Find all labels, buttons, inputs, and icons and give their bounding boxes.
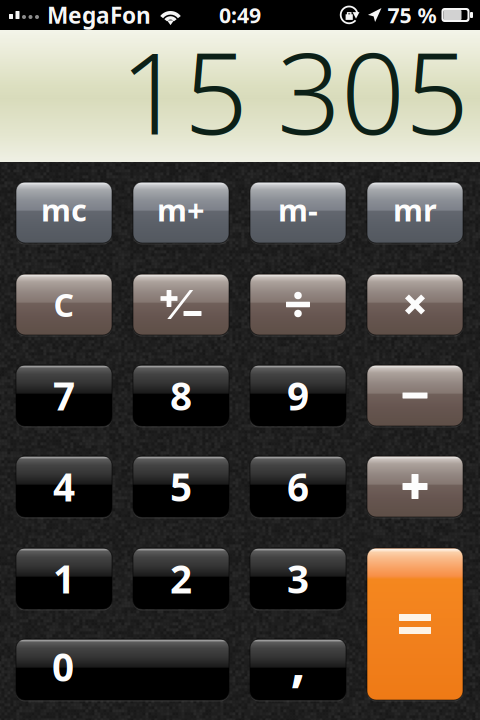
staticText: 3 <box>287 553 309 604</box>
staticText: MegaFon <box>47 0 151 30</box>
button[interactable]: Divide <box>250 274 346 335</box>
button[interactable]: mr <box>367 182 463 243</box>
staticText: , <box>290 625 305 696</box>
staticText: 5 <box>170 461 192 512</box>
button[interactable]: 7 <box>16 365 112 426</box>
button[interactable]: 0 <box>16 639 229 700</box>
staticText: 7 <box>53 370 75 421</box>
staticText: mc <box>41 189 87 230</box>
button[interactable]: m+ <box>133 182 229 243</box>
button[interactable]: , <box>250 639 346 700</box>
staticText: 0 <box>52 641 74 692</box>
staticText: 9 <box>287 370 309 421</box>
button[interactable]: 6 <box>250 456 346 517</box>
button[interactable]: 3 <box>250 548 346 609</box>
staticText: 8 <box>170 370 192 421</box>
staticText: 2 <box>170 553 192 604</box>
button[interactable]: m- <box>250 182 346 243</box>
button[interactable]: Equals <box>367 548 463 700</box>
staticText: m+ <box>157 189 205 230</box>
button[interactable]: 9 <box>250 365 346 426</box>
button[interactable]: 4 <box>16 456 112 517</box>
staticText: 15 305 <box>120 17 469 165</box>
button[interactable]: C <box>16 274 112 335</box>
staticText: 4 <box>53 461 75 512</box>
staticText: 75 % <box>387 1 436 29</box>
staticText: 6 <box>287 461 309 512</box>
button[interactable]: 1 <box>16 548 112 609</box>
button[interactable]: 8 <box>133 365 229 426</box>
staticText: 1 <box>53 553 75 604</box>
button[interactable]: mc <box>16 182 112 243</box>
button[interactable]: Plus minus <box>133 274 229 335</box>
staticText: C <box>53 283 74 326</box>
button[interactable]: 5 <box>133 456 229 517</box>
button[interactable]: Plus <box>367 456 463 517</box>
button[interactable]: Minus <box>367 365 463 426</box>
button[interactable]: Multiply <box>367 274 463 335</box>
button[interactable]: 2 <box>133 548 229 609</box>
staticText: m- <box>278 189 318 230</box>
staticText: mr <box>393 189 437 230</box>
staticText: 0:49 <box>219 1 261 29</box>
